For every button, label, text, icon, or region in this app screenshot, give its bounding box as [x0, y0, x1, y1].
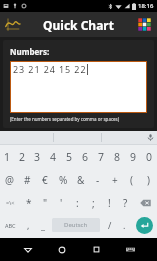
button[interactable]: Chart	[0, 12, 25, 37]
staticText: '	[60, 196, 63, 210]
button[interactable]: ?	[117, 191, 133, 214]
button[interactable]: /	[102, 214, 117, 236]
staticText: )	[147, 173, 150, 187]
button[interactable]: 9	[125, 145, 141, 168]
staticText: %	[59, 173, 68, 187]
staticText: @	[5, 173, 14, 187]
staticText: €	[42, 173, 48, 187]
staticText: =\<	[6, 199, 15, 206]
button[interactable]: 6	[77, 145, 93, 168]
button[interactable]: =\<	[0, 191, 21, 214]
staticText: (	[130, 173, 133, 187]
button[interactable]: 5	[61, 145, 77, 168]
button[interactable]: €	[36, 168, 54, 191]
button[interactable]: 1	[0, 145, 15, 168]
staticText: -	[96, 173, 100, 187]
staticText: (Enter the numbers separated by comma or…	[10, 116, 120, 122]
staticText: _	[41, 219, 45, 231]
button[interactable]: "	[37, 191, 53, 214]
button[interactable]: *	[21, 191, 37, 214]
button[interactable]: #	[18, 168, 36, 191]
staticText: 8	[114, 150, 121, 164]
button[interactable]: Switch keyboard	[113, 238, 147, 261]
staticText: ?	[123, 196, 128, 210]
staticText: +	[112, 173, 118, 187]
staticText: &	[77, 173, 85, 187]
staticText: ABC	[5, 222, 16, 229]
button[interactable]: Backspace	[133, 191, 157, 214]
staticText: 2	[19, 150, 26, 164]
button[interactable]: 4	[45, 145, 61, 168]
staticText: #	[24, 173, 31, 187]
button[interactable]: ABC	[0, 214, 21, 236]
button[interactable]: Recents	[79, 238, 113, 261]
button[interactable]: Enter	[136, 217, 153, 234]
staticText: "	[43, 196, 48, 210]
button[interactable]: 3	[30, 145, 45, 168]
staticText: ,	[27, 219, 30, 231]
staticText: 18:16	[138, 2, 154, 10]
staticText: 9	[130, 150, 137, 164]
staticText: 4	[50, 150, 57, 164]
staticText: :	[76, 196, 79, 210]
button[interactable]: 0	[141, 145, 157, 168]
button[interactable]: -	[89, 168, 106, 191]
staticText: 1	[4, 150, 11, 164]
staticText: /	[108, 219, 112, 231]
staticText: Deutsch	[64, 221, 88, 229]
button[interactable]: (	[123, 168, 140, 191]
button[interactable]: ;	[85, 191, 101, 214]
staticText: !	[108, 196, 111, 210]
button[interactable]: Deutsch	[52, 218, 100, 232]
button[interactable]: %	[54, 168, 72, 191]
button[interactable]: Voice input	[144, 131, 157, 144]
button[interactable]: )	[140, 168, 157, 191]
button[interactable]: 7	[93, 145, 109, 168]
staticText: *	[26, 196, 32, 210]
staticText: 5	[66, 150, 73, 164]
staticText: Quick Chart	[43, 17, 114, 33]
button[interactable]: Back	[10, 238, 45, 261]
button[interactable]: ,	[21, 214, 35, 236]
button[interactable]: 8	[109, 145, 125, 168]
button[interactable]: Colors	[132, 12, 157, 37]
button[interactable]: 2	[15, 145, 30, 168]
staticText: 23 21 24 15 22	[13, 63, 87, 75]
button[interactable]: .	[117, 214, 132, 236]
button[interactable]: @	[0, 168, 18, 191]
staticText: 0	[146, 150, 153, 164]
button[interactable]: _	[35, 214, 50, 236]
button[interactable]: :	[69, 191, 85, 214]
button[interactable]: Home	[45, 238, 79, 261]
button[interactable]: '	[53, 191, 69, 214]
button[interactable]: &	[72, 168, 89, 191]
staticText: Numbers:	[10, 46, 50, 57]
staticText: 7	[98, 150, 105, 164]
staticText: 6	[82, 150, 89, 164]
button[interactable]: +	[106, 168, 123, 191]
button[interactable]: !	[101, 191, 117, 214]
staticText: ;	[92, 196, 95, 210]
staticText: .	[123, 219, 126, 231]
staticText: 3	[34, 150, 41, 164]
button[interactable]: 23 21 24 15 22	[10, 61, 147, 113]
